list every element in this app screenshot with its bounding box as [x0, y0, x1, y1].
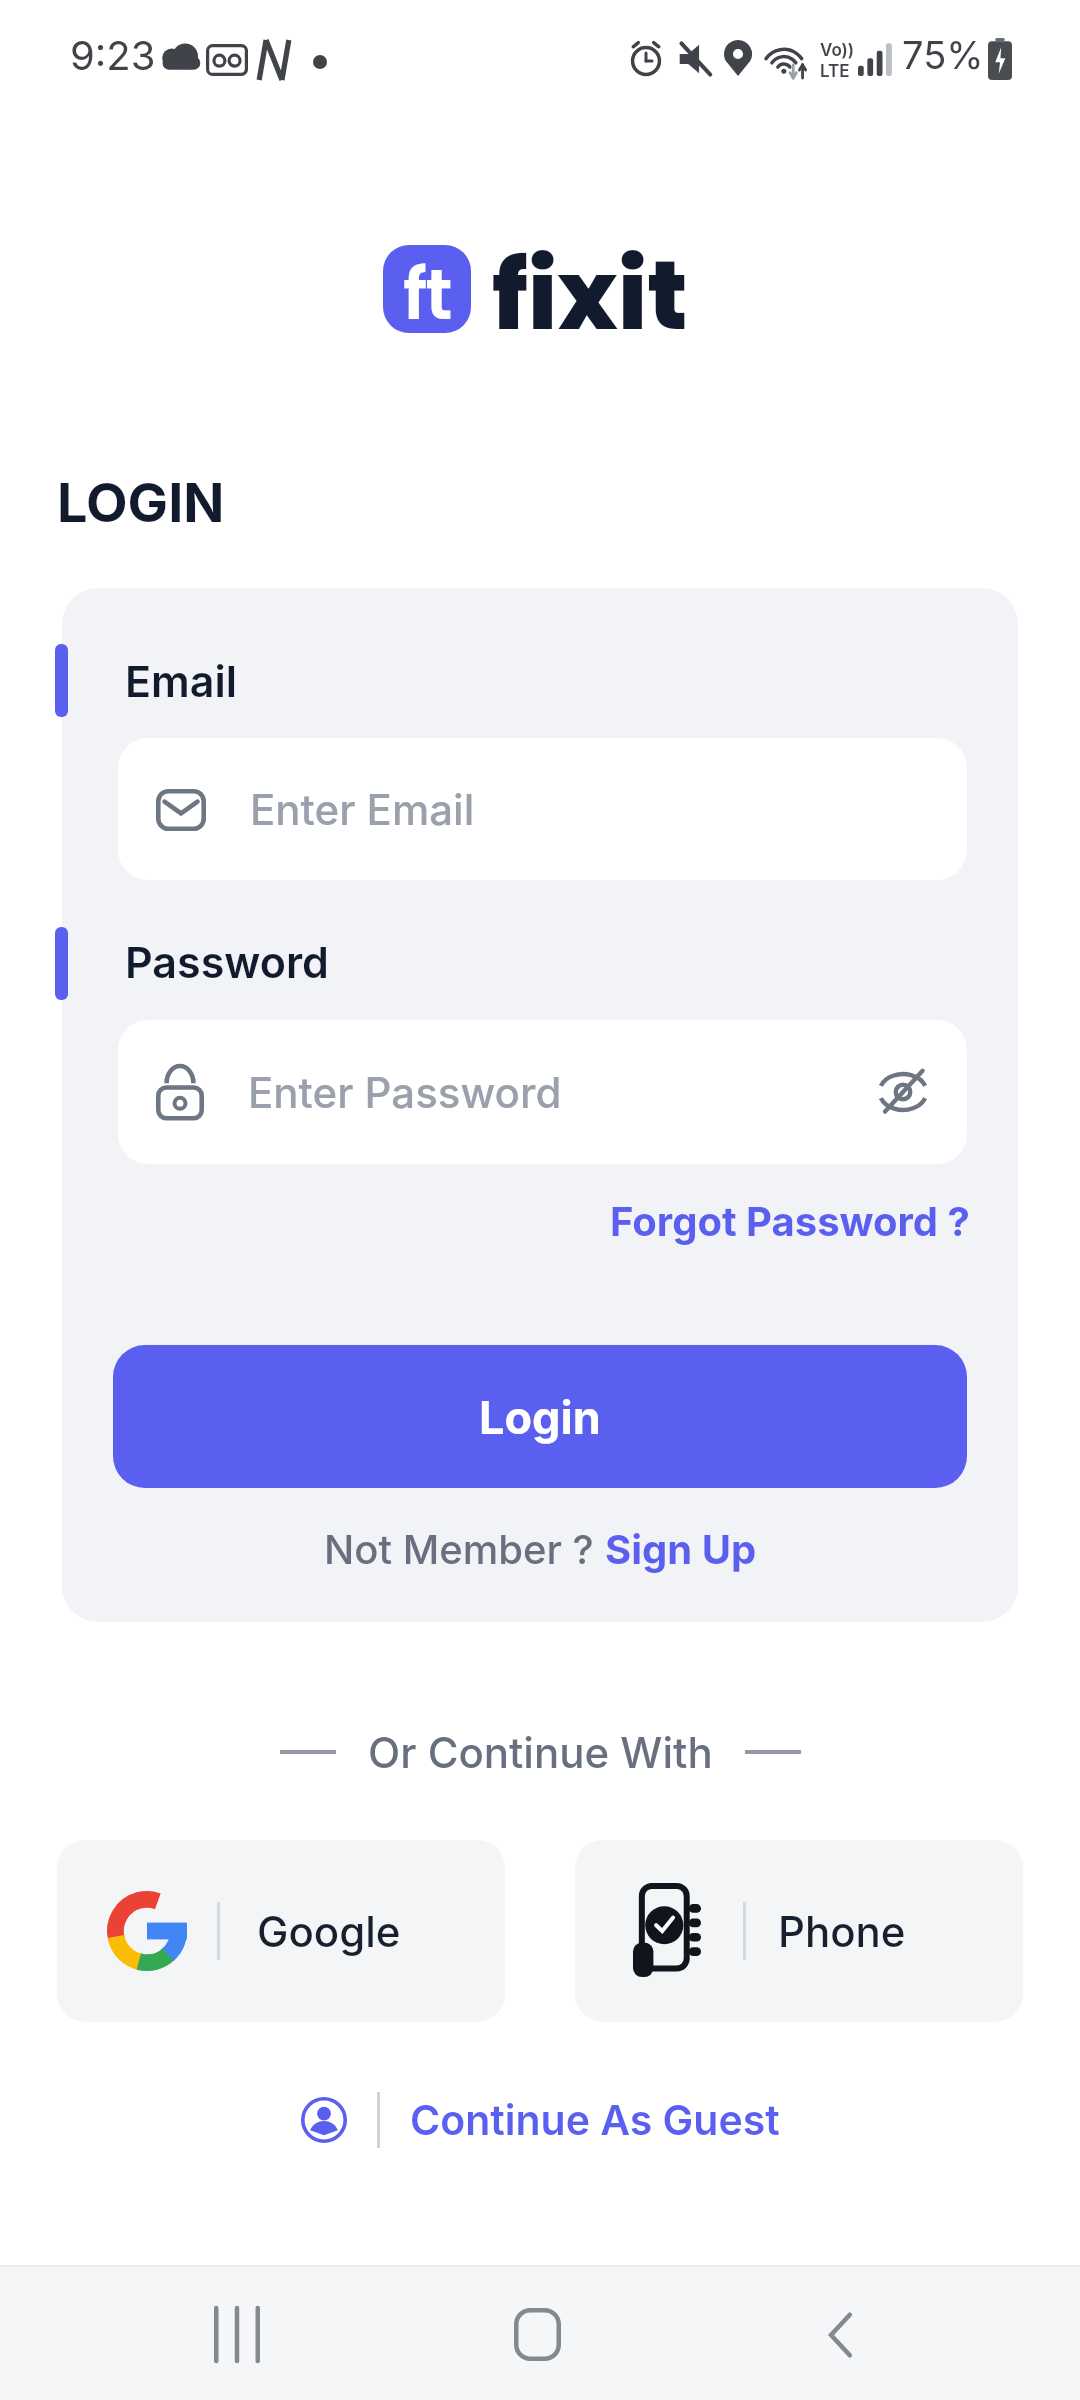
- staticText: Login: [479, 1390, 601, 1444]
- staticText: fixit: [492, 228, 688, 332]
- staticText: Phone: [778, 1906, 906, 1957]
- staticText: Or Continue With: [368, 1727, 713, 1778]
- button[interactable]: Forgot Password ?: [420, 1196, 970, 1246]
- staticText: Google: [257, 1906, 401, 1957]
- button[interactable]: Google: [57, 1840, 505, 2022]
- staticText: Continue As Guest: [410, 2095, 780, 2145]
- staticText: Forgot Password ?: [610, 1197, 970, 1245]
- button[interactable]: [826, 2312, 854, 2358]
- button[interactable]: [214, 2308, 260, 2361]
- button[interactable]: [875, 1064, 931, 1120]
- staticText: Enter Password: [248, 1067, 562, 1118]
- staticText: 75%: [902, 32, 984, 78]
- staticText: LOGIN: [57, 470, 225, 532]
- button[interactable]: Enter Email: [118, 738, 967, 880]
- button[interactable]: Enter Password: [118, 1020, 967, 1164]
- button[interactable]: Continue As Guest: [0, 2088, 1080, 2152]
- button[interactable]: Sign Up: [605, 1525, 757, 1573]
- staticText: Not Member ?: [324, 1525, 605, 1573]
- staticText: Sign Up: [605, 1525, 757, 1573]
- staticText: LTE: [820, 61, 850, 82]
- staticText: Email: [125, 655, 237, 707]
- staticText: 9:23: [70, 31, 156, 79]
- staticText: Password: [125, 936, 329, 988]
- staticText: ft: [403, 245, 451, 333]
- staticText: Enter Email: [250, 784, 475, 835]
- button[interactable]: Login: [113, 1345, 967, 1488]
- button[interactable]: Phone: [575, 1840, 1023, 2022]
- staticText: Vo)): [820, 40, 855, 61]
- button[interactable]: [514, 2308, 561, 2361]
